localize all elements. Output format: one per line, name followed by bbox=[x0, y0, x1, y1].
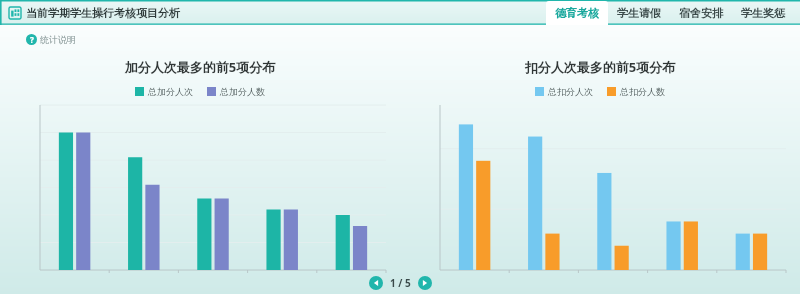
staticText: ? bbox=[30, 34, 34, 45]
staticText: 总扣分人次 bbox=[548, 86, 593, 97]
button[interactable]: Previous page bbox=[369, 276, 383, 290]
staticText: 加分人次最多的前5项分布 bbox=[0, 58, 400, 76]
button[interactable]: 德育考核 bbox=[546, 1, 608, 25]
button[interactable]: 宿舍安排 bbox=[670, 1, 732, 25]
staticText: 学生请假 bbox=[617, 6, 661, 20]
staticText: 1 / 5 bbox=[390, 276, 411, 290]
button[interactable]: 学生奖惩 bbox=[732, 1, 794, 25]
staticText: 宿舍安排 bbox=[679, 6, 723, 20]
staticText: 扣分人次最多的前5项分布 bbox=[400, 58, 800, 76]
staticText: 德育考核 bbox=[555, 6, 599, 20]
button[interactable]: 学生请假 bbox=[608, 1, 670, 25]
button[interactable]: Next page bbox=[418, 276, 432, 290]
button[interactable]: ? bbox=[26, 34, 76, 45]
staticText: 总加分人数 bbox=[220, 86, 265, 97]
staticText: 学生奖惩 bbox=[741, 6, 785, 20]
staticText: 总加分人次 bbox=[148, 86, 193, 97]
staticText: 总扣分人数 bbox=[620, 86, 665, 97]
staticText: 统计说明 bbox=[40, 34, 76, 45]
staticText: 当前学期学生操行考核项目分析 bbox=[26, 6, 180, 20]
